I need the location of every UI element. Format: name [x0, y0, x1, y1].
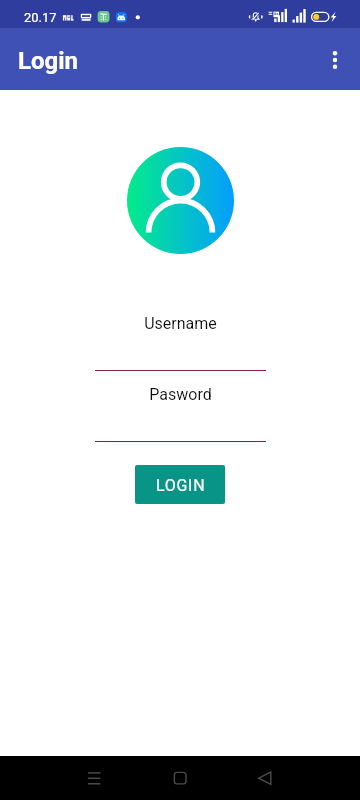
staticText: 20.17	[24, 10, 57, 25]
button[interactable]: Recent apps	[70, 756, 118, 800]
button[interactable]: Back	[240, 756, 288, 800]
staticText: Login	[18, 47, 79, 75]
staticText: Pasword	[149, 385, 212, 404]
staticText: LOGIN	[156, 476, 206, 495]
button[interactable]: More options	[315, 40, 355, 80]
staticText: Username	[144, 314, 217, 333]
button[interactable]: LOGIN	[135, 465, 225, 504]
button[interactable]: Home	[156, 756, 204, 800]
